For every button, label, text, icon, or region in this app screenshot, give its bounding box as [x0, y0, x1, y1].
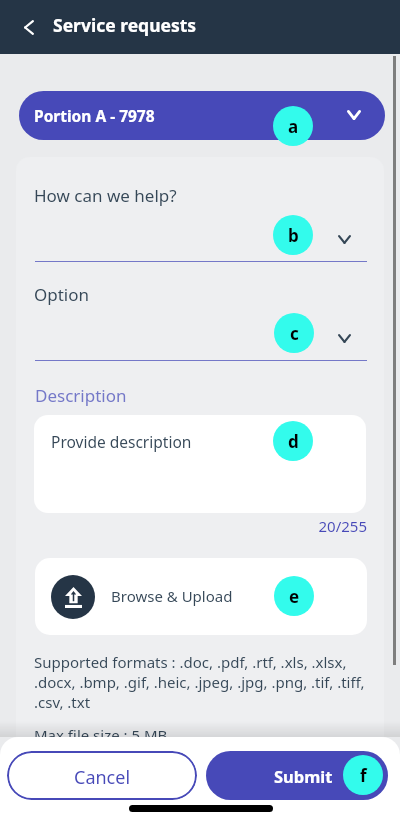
- staticText: How can we help?: [34, 184, 177, 207]
- button[interactable]: Browse & Upload: [35, 558, 367, 635]
- staticText: Service requests: [53, 13, 197, 37]
- staticText: Browse & Upload: [111, 586, 233, 606]
- staticText: Supported formats : .doc, .pdf, .rtf, .x…: [34, 652, 365, 712]
- staticText: Description: [35, 384, 127, 407]
- staticText: d: [288, 430, 299, 453]
- staticText: b: [288, 224, 299, 247]
- staticText: e: [289, 585, 300, 608]
- button[interactable]: Cancel: [7, 751, 197, 800]
- staticText: f: [360, 764, 367, 787]
- button[interactable]: Portion A - 7978: [19, 91, 385, 140]
- staticText: 20/255: [250, 516, 367, 536]
- button[interactable]: Back: [5, 0, 53, 54]
- button[interactable]: Provide description: [34, 415, 366, 513]
- staticText: Provide description: [51, 431, 192, 452]
- staticText: Submit: [274, 765, 333, 787]
- staticText: Portion A - 7978: [34, 105, 155, 126]
- button[interactable]: [34, 215, 367, 261]
- staticText: Option: [34, 283, 90, 306]
- button[interactable]: [34, 314, 367, 360]
- button[interactable]: Submit: [206, 751, 388, 800]
- staticText: a: [288, 115, 299, 138]
- staticText: Cancel: [74, 765, 131, 790]
- staticText: Max file size : 5 MB: [34, 725, 168, 745]
- staticText: c: [290, 322, 299, 345]
